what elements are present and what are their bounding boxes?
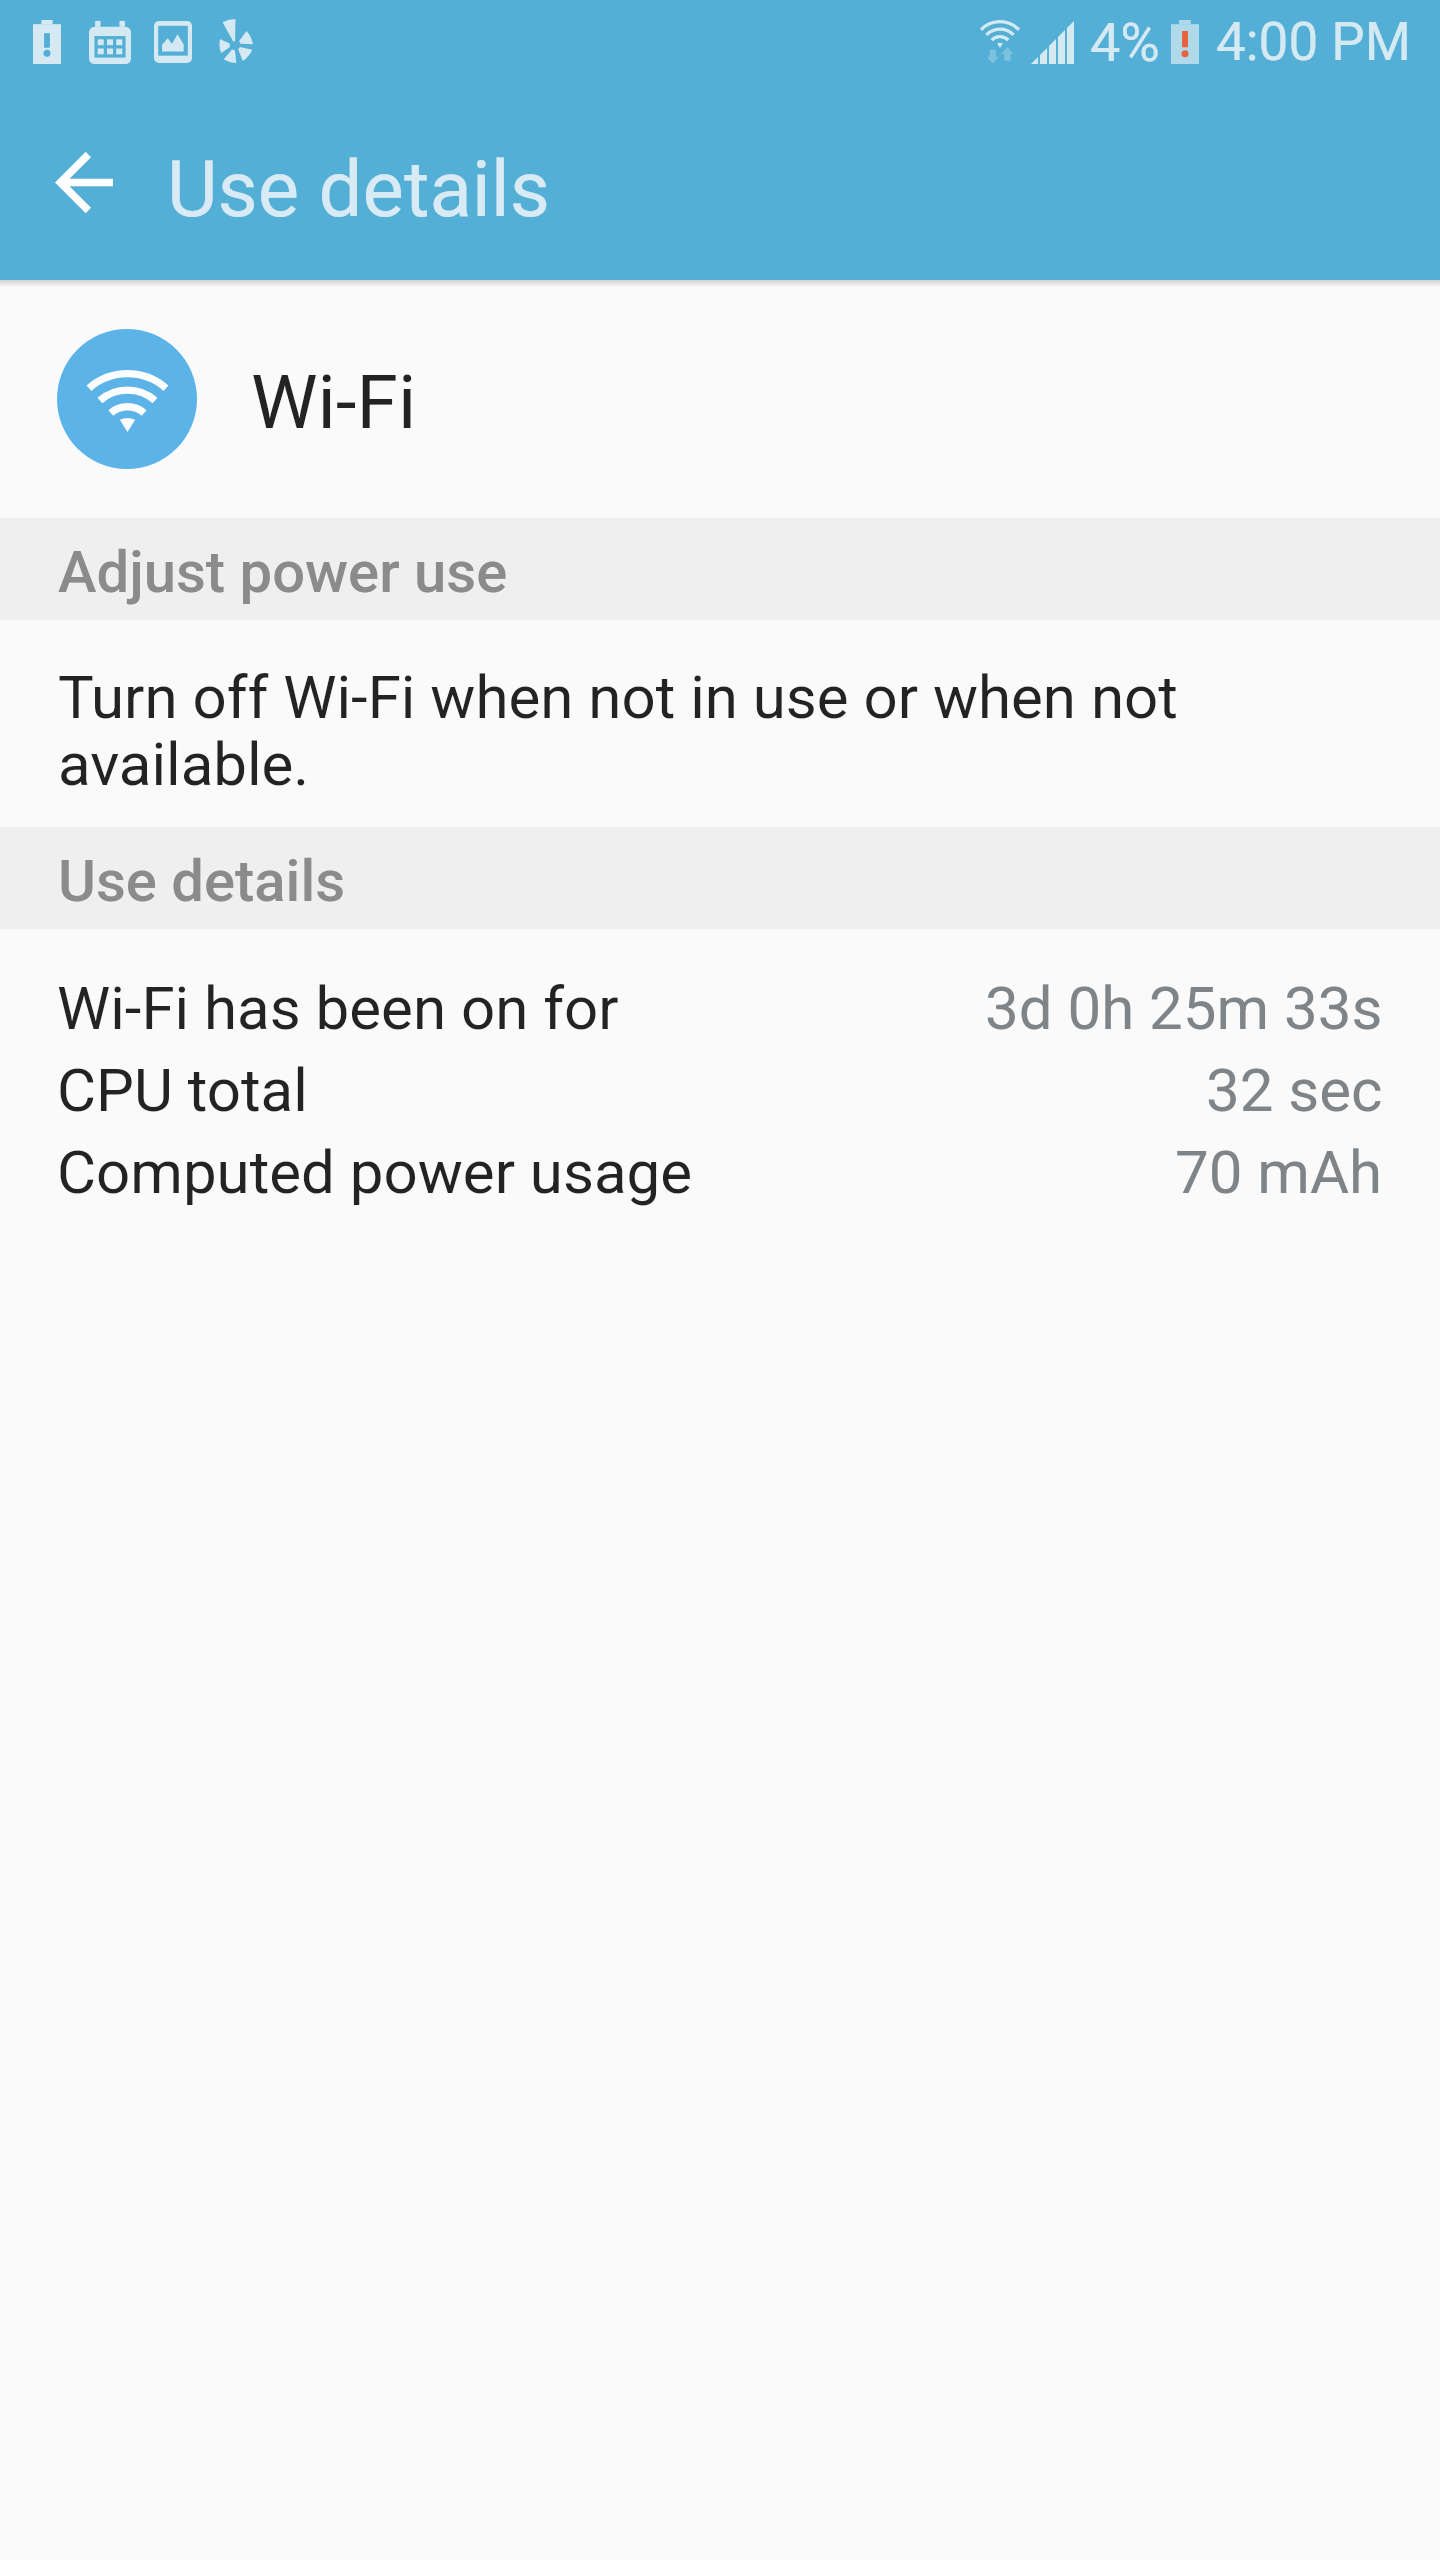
button[interactable]: CPU total <box>0 1049 1440 1131</box>
staticText: Wi-Fi has been on for <box>57 973 619 1043</box>
staticText: 70 mAh <box>1175 1137 1383 1207</box>
button[interactable]: Turn off Wi-Fi when not in use or when n… <box>0 620 1440 827</box>
staticText: 4:00 PM <box>1216 11 1412 73</box>
staticText: 32 sec <box>1206 1055 1383 1125</box>
button[interactable]: Wi-Fi <box>0 289 1440 518</box>
staticText: Use details <box>58 847 346 915</box>
button[interactable]: Computed power usage <box>0 1131 1440 1213</box>
button[interactable]: Wi-Fi has been on for <box>0 967 1440 1049</box>
button[interactable]: Back <box>42 140 126 224</box>
staticText: Turn off Wi-Fi when not in use or when n… <box>58 665 1300 799</box>
staticText: Adjust power use <box>58 538 508 606</box>
staticText: CPU total <box>57 1055 308 1125</box>
staticText: 4% <box>1090 11 1160 74</box>
staticText: Use details <box>167 144 551 235</box>
staticText: Wi-Fi <box>251 358 417 446</box>
staticText: 3d 0h 25m 33s <box>985 973 1383 1043</box>
staticText: Computed power usage <box>57 1137 693 1207</box>
